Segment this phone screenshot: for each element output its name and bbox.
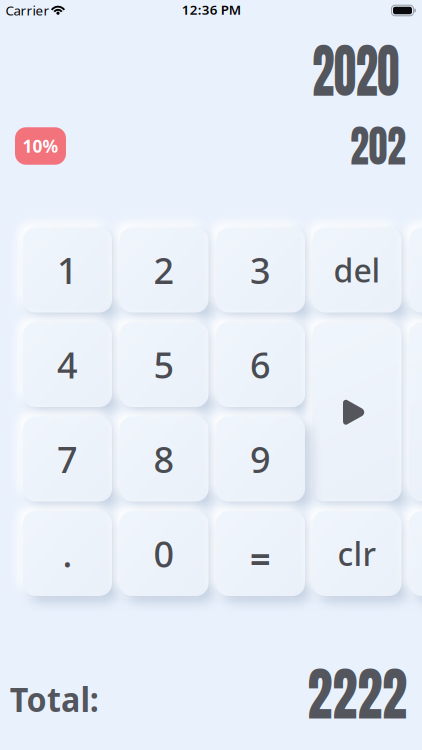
staticText: 5: [153, 341, 174, 388]
button[interactable]: 7: [23, 416, 112, 501]
button[interactable]: 9: [216, 416, 305, 501]
button[interactable]: =: [216, 511, 305, 596]
button[interactable]: 10%: [15, 127, 66, 165]
button[interactable]: 1: [23, 227, 112, 312]
staticText: .: [62, 530, 72, 577]
staticText: 1: [57, 246, 78, 294]
staticText: 3: [250, 246, 271, 294]
button[interactable]: .: [23, 511, 112, 596]
button[interactable]: 6: [216, 322, 305, 407]
staticText: 9: [250, 435, 271, 483]
button[interactable]: del: [312, 227, 401, 312]
staticText: clr: [337, 532, 376, 575]
staticText: 10%: [22, 134, 58, 157]
staticText: 2222: [299, 650, 415, 738]
staticText: 2: [153, 246, 174, 294]
button[interactable]: clr: [312, 511, 401, 596]
staticText: Carrier: [5, 1, 49, 19]
staticText: del: [333, 249, 380, 291]
button[interactable]: 5: [119, 322, 208, 407]
button[interactable]: 2: [119, 227, 208, 312]
button[interactable]: 3: [216, 227, 305, 312]
staticText: 7: [57, 435, 78, 483]
staticText: 6: [250, 341, 271, 388]
staticText: 2020: [298, 26, 414, 115]
staticText: 8: [153, 435, 174, 483]
staticText: 0: [153, 530, 174, 577]
button[interactable]: 4: [23, 322, 112, 407]
button[interactable]: 0: [119, 511, 208, 596]
staticText: =: [250, 534, 271, 582]
button[interactable]: Calculate: [312, 322, 401, 501]
staticText: 4: [57, 341, 78, 388]
staticText: Total:: [6, 675, 102, 721]
staticText: 202: [345, 112, 411, 179]
staticText: 12:36 PM: [182, 1, 241, 18]
button[interactable]: 8: [119, 416, 208, 501]
